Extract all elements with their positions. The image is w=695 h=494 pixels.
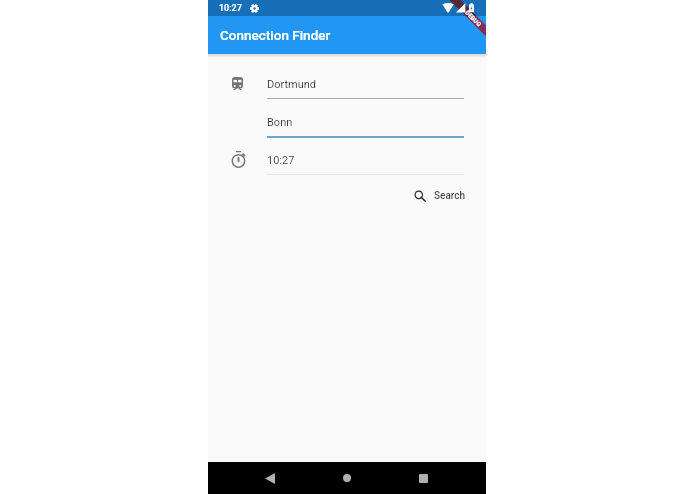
button[interactable]: Bonn [267, 110, 464, 136]
staticText: Dortmund [267, 78, 317, 91]
button[interactable]: Home [337, 462, 357, 494]
button[interactable]: Transit mode [232, 77, 243, 90]
button[interactable]: Back [260, 462, 280, 494]
button[interactable]: Dortmund [267, 72, 464, 98]
staticText: 10:27 [267, 154, 295, 167]
staticText: Bonn [267, 116, 293, 129]
button[interactable]: 10:27 [267, 148, 464, 174]
button[interactable]: Departure time [232, 151, 245, 166]
button[interactable]: Search [410, 186, 470, 206]
staticText: 10:27 [219, 3, 242, 14]
staticText: Connection Finder [220, 27, 331, 43]
staticText: Search [434, 190, 466, 202]
button[interactable]: Recent apps [413, 462, 433, 494]
staticText: DEBUG [464, 9, 483, 28]
